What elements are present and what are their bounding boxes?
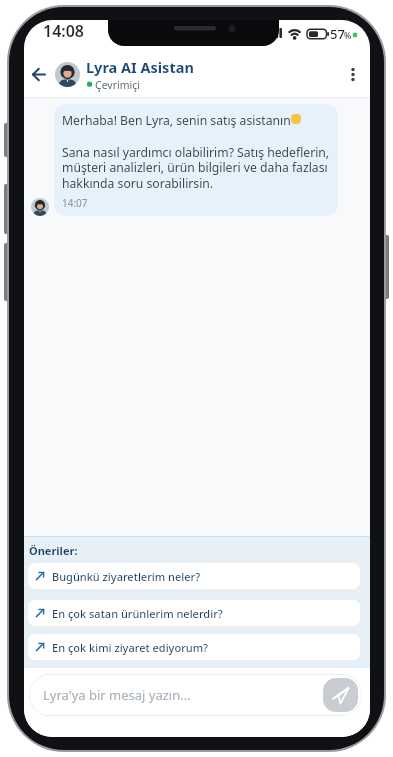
button[interactable] xyxy=(342,64,364,86)
button[interactable]: En çok kimi ziyaret ediyorum? xyxy=(27,633,361,661)
staticText: Lyra'ya bir mesaj yazın... xyxy=(43,686,191,704)
staticText: Lyra AI Asistan xyxy=(86,57,194,77)
staticText: En çok kimi ziyaret ediyorum? xyxy=(52,640,209,655)
staticText: Öneriler: xyxy=(29,543,78,558)
staticText: % xyxy=(344,30,352,42)
staticText: 14:07 xyxy=(62,196,88,210)
button[interactable]: Lyra'ya bir mesaj yazın... xyxy=(29,674,362,716)
button[interactable] xyxy=(28,63,51,86)
staticText: 14:08 xyxy=(43,20,85,42)
staticText: Çevrimiçi xyxy=(95,78,141,92)
staticText: Sana nasıl yardımcı olabilirim? Satış he… xyxy=(62,144,330,192)
button[interactable] xyxy=(323,678,358,712)
button[interactable]: En çok satan ürünlerim nelerdir? xyxy=(27,599,361,627)
staticText: 57 xyxy=(330,25,345,43)
staticText: Bugünkü ziyaretlerim neler? xyxy=(52,569,201,584)
staticText: Merhaba! Ben Lyra, senin satış asistanın xyxy=(62,112,291,129)
button[interactable]: Bugünkü ziyaretlerim neler? xyxy=(27,562,361,590)
staticText: En çok satan ürünlerim nelerdir? xyxy=(52,606,223,621)
